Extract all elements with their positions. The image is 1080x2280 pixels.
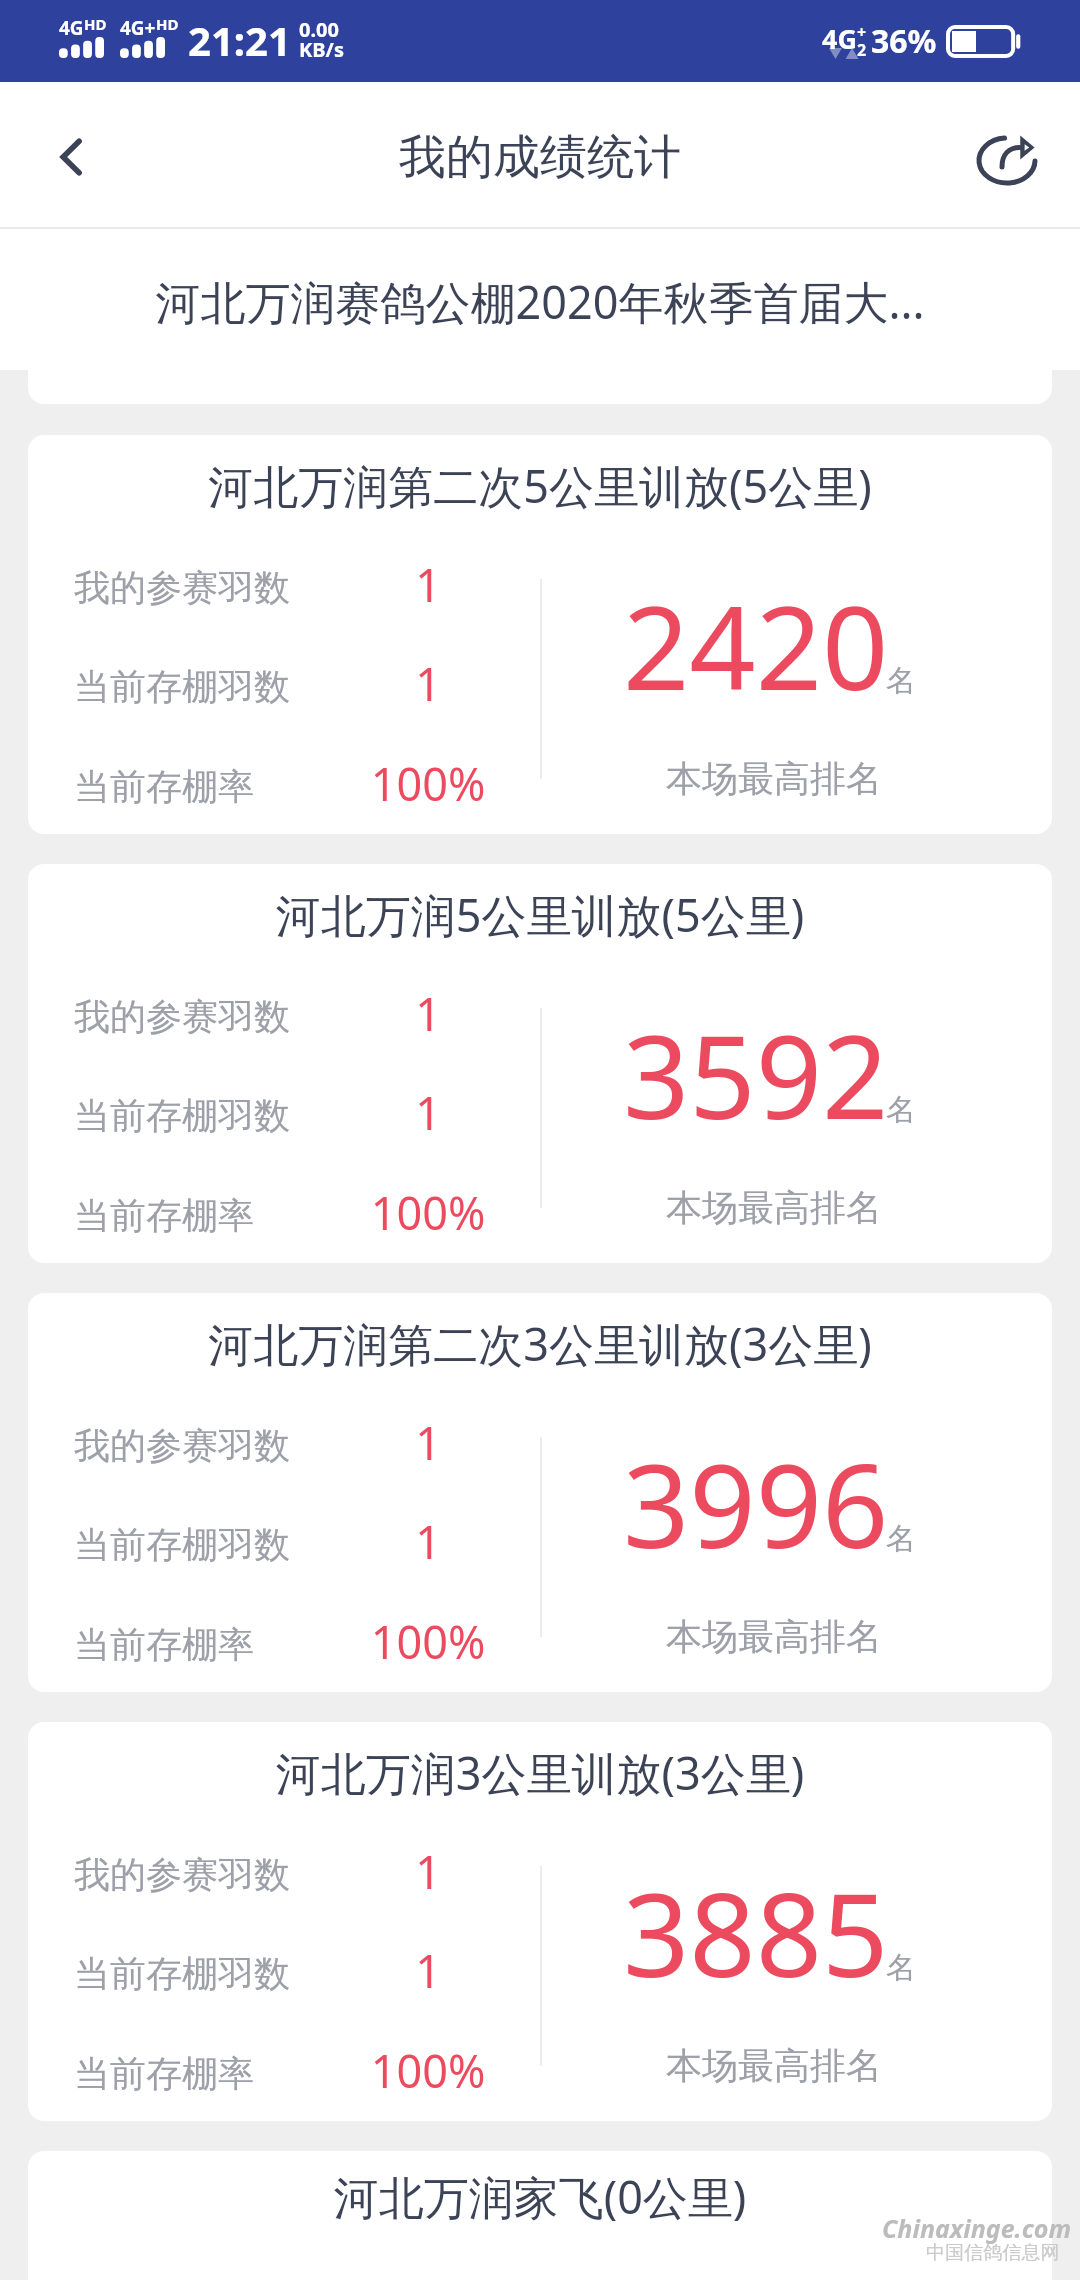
staticText: 36% bbox=[871, 19, 937, 63]
staticText: 100% bbox=[308, 2040, 548, 2101]
staticText: 本场最高排名 bbox=[559, 756, 989, 801]
staticText: 2 bbox=[857, 39, 867, 61]
staticText: 河北万润第二次5公里训放(5公里) bbox=[28, 455, 1052, 516]
staticText: 河北万润第二次3公里训放(3公里) bbox=[28, 1313, 1052, 1374]
staticText: 1 bbox=[308, 1940, 548, 2001]
staticText: HD bbox=[156, 14, 179, 34]
staticText: 4G bbox=[822, 20, 857, 57]
staticText: 名 bbox=[886, 1520, 916, 1558]
staticText: 名 bbox=[886, 1949, 916, 1987]
staticText: 当前存棚率 bbox=[74, 764, 254, 809]
staticText: 本场最高排名 bbox=[559, 1614, 989, 1659]
staticText: HD bbox=[84, 14, 107, 34]
staticText: 中国信鸽信息网 bbox=[926, 2241, 1060, 2265]
staticText: 21:21 bbox=[188, 13, 291, 67]
staticText: 河北万润家飞(0公里) bbox=[28, 2166, 1052, 2227]
staticText: 1 bbox=[308, 1412, 548, 1473]
staticText: 当前存棚羽数 bbox=[74, 1522, 290, 1567]
staticText: 当前存棚率 bbox=[74, 1622, 254, 1667]
staticText: 2420 bbox=[623, 566, 889, 724]
staticText: 4G bbox=[59, 15, 84, 41]
staticText: 我的参赛羽数 bbox=[74, 1423, 290, 1468]
staticText: 1 bbox=[308, 1082, 548, 1143]
staticText: 名 bbox=[886, 662, 916, 700]
button[interactable]: 河北万润3公里训放(3公里) bbox=[28, 1722, 1052, 2121]
button[interactable]: 河北万润赛鸽公棚2020年秋季首届大... bbox=[0, 229, 1080, 370]
staticText: 1 bbox=[308, 1511, 548, 1572]
staticText: 3996 bbox=[623, 1424, 889, 1582]
staticText: 名 bbox=[886, 1091, 916, 1129]
staticText: 本场最高排名 bbox=[559, 2043, 989, 2088]
staticText: 1 bbox=[308, 653, 548, 714]
staticText: 我的参赛羽数 bbox=[74, 565, 290, 610]
staticText: 河北万润3公里训放(3公里) bbox=[28, 1742, 1052, 1803]
button[interactable]: 河北万润5公里训放(5公里) bbox=[28, 864, 1052, 1263]
staticText: 0.00 bbox=[299, 16, 339, 43]
staticText: 100% bbox=[308, 753, 548, 814]
staticText: 我的参赛羽数 bbox=[74, 994, 290, 1039]
staticText: 3592 bbox=[623, 995, 889, 1153]
staticText: 河北万润赛鸽公棚2020年秋季首届大... bbox=[0, 271, 1080, 332]
button[interactable]: Back bbox=[17, 104, 123, 210]
staticText: 4G+ bbox=[120, 15, 156, 41]
staticText: 1 bbox=[308, 1841, 548, 1902]
staticText: 100% bbox=[308, 1611, 548, 1672]
staticText: 3885 bbox=[623, 1853, 889, 2011]
staticText: 当前存棚羽数 bbox=[74, 664, 290, 709]
staticText: 1 bbox=[308, 983, 548, 1044]
staticText: 本场最高排名 bbox=[559, 1185, 989, 1230]
staticText: + bbox=[857, 21, 867, 43]
staticText: Chinaxinge.com bbox=[882, 2211, 1072, 2245]
button[interactable] bbox=[28, 229, 1052, 404]
staticText: 河北万润5公里训放(5公里) bbox=[28, 884, 1052, 945]
staticText: 当前存棚率 bbox=[74, 2051, 254, 2096]
button[interactable]: 河北万润第二次3公里训放(3公里) bbox=[28, 1293, 1052, 1692]
button[interactable]: 河北万润家飞(0公里) bbox=[28, 2151, 1052, 2280]
staticText: KB/s bbox=[299, 36, 344, 63]
button[interactable]: 河北万润第二次5公里训放(5公里) bbox=[28, 435, 1052, 834]
staticText: 1 bbox=[308, 554, 548, 615]
staticText: 我的成绩统计 bbox=[0, 128, 1080, 187]
staticText: 我的参赛羽数 bbox=[74, 1852, 290, 1897]
staticText: 当前存棚羽数 bbox=[74, 1093, 290, 1138]
staticText: 当前存棚羽数 bbox=[74, 1951, 290, 1996]
staticText: 100% bbox=[308, 1182, 548, 1243]
button[interactable]: Share bbox=[954, 103, 1060, 209]
staticText: 当前存棚率 bbox=[74, 1193, 254, 1238]
